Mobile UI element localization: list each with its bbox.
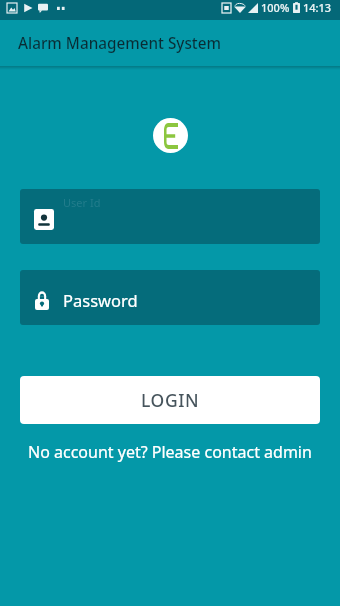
button[interactable]: App logo [153, 118, 188, 153]
button[interactable]: No account yet? Please contact admin [0, 441, 340, 463]
button[interactable]: Password input field [20, 270, 320, 325]
staticText: User Id [63, 195, 101, 210]
staticText: No account yet? Please contact admin [28, 441, 312, 463]
staticText: 100% [261, 0, 290, 15]
staticText: Password [63, 289, 138, 311]
staticText: LOGIN [141, 388, 200, 412]
staticText: Alarm Management System [18, 33, 221, 54]
button[interactable]: User Id input field [20, 189, 320, 244]
button[interactable]: LOGIN [20, 376, 320, 424]
staticText: 14:13 [303, 0, 332, 15]
